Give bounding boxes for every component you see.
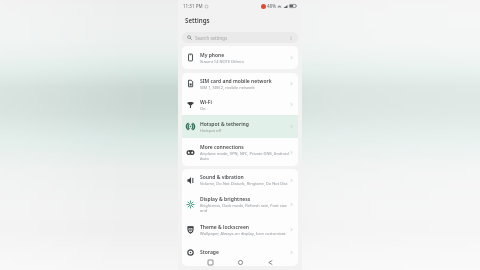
staticText: SIM card and mobile network [200,78,272,85]
staticText: Wi-Fi [200,99,212,106]
staticText: Settings [185,16,210,24]
staticText: Display & brightness [200,196,251,203]
button[interactable]: More connections [182,138,298,166]
button[interactable]: Recents [202,254,218,270]
staticText: Theme & lockscreen [200,224,250,231]
staticText: Airplane mode, VPN, NFC, Private DNS, An… [200,151,289,161]
staticText: Wallpaper, Always-on display, Icon custo… [200,231,286,236]
button[interactable]: Back [262,254,278,270]
staticText: 48% [267,3,276,9]
staticText: Hotspot off [200,128,222,133]
button[interactable]: Storage [182,241,298,263]
button[interactable]: SIM card and mobile network [182,73,298,94]
button[interactable]: Wi-Fi [182,94,298,115]
button[interactable]: Display & brightness [182,191,298,218]
staticText: Hotspot & tethering [200,121,249,128]
staticText: Storage [200,249,219,256]
staticText: On [200,106,206,111]
staticText: Brightness, Dark mode, Refresh rate, Fon… [200,203,289,213]
button[interactable]: Theme & lockscreen [182,218,298,241]
button[interactable]: Home [232,254,248,270]
staticText: Volume, Do Not Disturb, Ringtone, Do Not… [200,181,288,186]
staticText: Xiaomi 14 NOTE Others [200,59,244,64]
staticText: More connections [200,144,244,151]
button[interactable]: Search settings [182,32,298,43]
staticText: SIM 1, SIM 2, mobile network [200,85,255,90]
staticText: My phone [200,52,225,59]
button[interactable]: My phone [182,46,298,69]
staticText: Sound & vibration [200,174,244,181]
button[interactable]: Sound & vibration [182,169,298,191]
button[interactable]: Hotspot & tethering [182,115,298,138]
staticText: 11:31 PM [183,3,203,9]
staticText: Search settings [195,35,228,41]
